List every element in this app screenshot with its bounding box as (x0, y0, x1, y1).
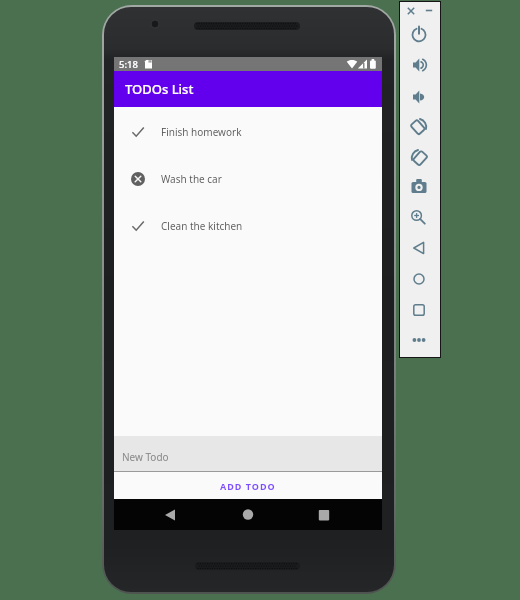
button[interactable]: Rotate right (407, 145, 431, 169)
button[interactable]: Wash the car (114, 155, 382, 202)
button[interactable]: ADD TODO (114, 472, 382, 499)
button[interactable]: Home (407, 267, 431, 291)
staticText: Finish homework (161, 125, 242, 139)
staticText: Clean the kitchen (161, 219, 243, 233)
button[interactable]: Overview (407, 298, 431, 322)
button[interactable]: More (407, 328, 431, 352)
button[interactable]: Rotate left (407, 114, 431, 138)
button[interactable]: Home (232, 499, 264, 530)
button[interactable]: Volume down (407, 85, 431, 109)
button[interactable]: New Todo (114, 436, 382, 472)
staticText: New Todo (122, 450, 169, 464)
button[interactable]: Clean the kitchen (114, 202, 382, 249)
button[interactable]: Back (154, 499, 186, 530)
staticText: TODOs List (125, 80, 194, 98)
staticText: ADD TODO (220, 480, 276, 492)
button[interactable]: Volume up (407, 53, 431, 77)
button[interactable]: Finish homework (114, 108, 382, 155)
button[interactable]: Minimize (421, 3, 437, 19)
button[interactable]: Power (407, 22, 431, 46)
button[interactable]: Overview (308, 499, 340, 530)
button[interactable]: Screenshot (407, 175, 431, 199)
staticText: 5:18 (119, 58, 138, 71)
button[interactable]: Zoom (407, 204, 431, 228)
button[interactable]: Back (407, 236, 431, 260)
button[interactable]: Close (403, 3, 419, 19)
staticText: Wash the car (161, 172, 222, 186)
